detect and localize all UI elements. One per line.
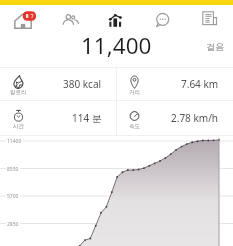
- staticText: 거리: [129, 89, 140, 96]
- staticText: 2850: [7, 221, 19, 228]
- button[interactable]: Friends: [46, 5, 92, 32]
- staticText: 11400: [7, 138, 22, 145]
- staticText: 7.64 km: [181, 77, 219, 91]
- button[interactable]: 거리: [116, 68, 233, 100]
- button[interactable]: Chat: [139, 5, 186, 32]
- button[interactable]: Statistics: [92, 5, 139, 32]
- staticText: 속도: [129, 123, 140, 130]
- staticText: 11,400: [81, 30, 152, 61]
- button[interactable]: 시간: [0, 101, 116, 135]
- staticText: 걸음: [206, 41, 224, 52]
- button[interactable]: 속도: [116, 101, 233, 135]
- button[interactable]: Home: [0, 5, 46, 32]
- staticText: 5700: [7, 193, 19, 200]
- staticText: 시간: [13, 123, 24, 130]
- staticText: 2.78 km/h: [171, 111, 219, 125]
- button[interactable]: News: [186, 5, 233, 32]
- staticText: 칼로리: [10, 89, 27, 96]
- staticText: 114 분: [72, 111, 102, 125]
- button[interactable]: 칼로리: [0, 68, 116, 100]
- staticText: 8550: [7, 166, 19, 173]
- staticText: 380 kcal: [63, 77, 102, 91]
